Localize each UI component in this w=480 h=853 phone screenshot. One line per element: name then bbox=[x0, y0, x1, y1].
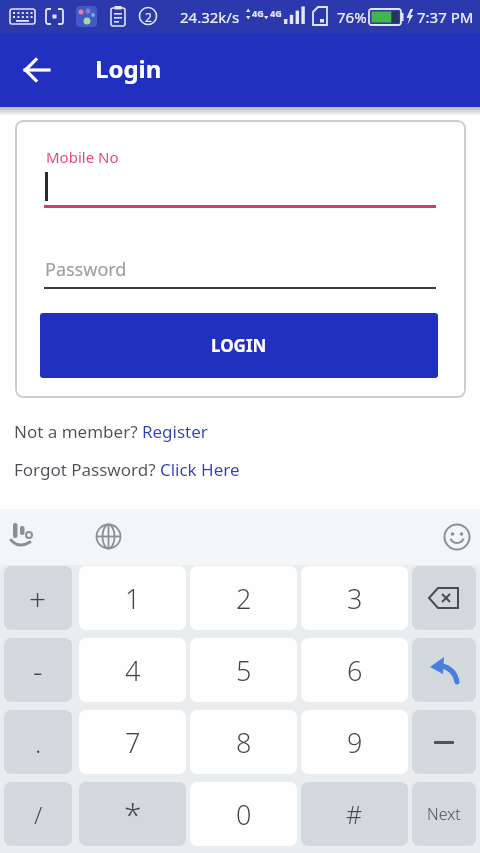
button[interactable]: 5 bbox=[190, 638, 297, 702]
button[interactable]: # bbox=[301, 782, 408, 846]
button[interactable]: 1 bbox=[79, 566, 186, 630]
button[interactable]: Next bbox=[412, 782, 476, 846]
button[interactable] bbox=[412, 566, 476, 630]
button[interactable]: 8 bbox=[190, 710, 297, 774]
button[interactable]: 9 bbox=[301, 710, 408, 774]
button[interactable] bbox=[412, 638, 476, 702]
staticText: 4 bbox=[125, 652, 141, 689]
staticText: 9 bbox=[347, 724, 363, 761]
button[interactable]: * bbox=[79, 782, 186, 846]
staticText: 24.32k/s bbox=[180, 7, 240, 27]
staticText: 3 bbox=[347, 580, 363, 617]
button[interactable] bbox=[10, 523, 42, 551]
button[interactable]: Not a member? Register bbox=[14, 420, 208, 443]
staticText: . bbox=[35, 725, 42, 760]
staticText: # bbox=[346, 797, 363, 831]
button[interactable]: 0 bbox=[190, 782, 297, 846]
button[interactable]: 2 bbox=[190, 566, 297, 630]
button[interactable] bbox=[24, 57, 50, 83]
button[interactable]: . bbox=[4, 710, 72, 774]
staticText: LOGIN bbox=[211, 334, 267, 357]
button[interactable]: 4 bbox=[79, 638, 186, 702]
staticText: Mobile No bbox=[46, 147, 119, 167]
button[interactable] bbox=[443, 523, 471, 551]
staticText: * bbox=[124, 792, 142, 836]
staticText: 5 bbox=[236, 652, 252, 689]
staticText: 6 bbox=[347, 652, 363, 689]
button[interactable] bbox=[412, 710, 476, 774]
staticText: Password bbox=[45, 257, 127, 282]
button[interactable]: 6 bbox=[301, 638, 408, 702]
button[interactable]: Forgot Password? Click Here bbox=[14, 458, 240, 481]
staticText: Login bbox=[95, 52, 162, 85]
staticText: 2 bbox=[236, 580, 252, 617]
staticText: 0 bbox=[236, 796, 252, 833]
staticText: + bbox=[29, 578, 47, 619]
staticText: 76% bbox=[337, 7, 367, 27]
staticText: 2 bbox=[145, 9, 152, 25]
button[interactable]: LOGIN bbox=[40, 313, 438, 378]
button[interactable]: / bbox=[4, 782, 72, 846]
staticText: Next bbox=[427, 803, 461, 825]
staticText: 4G bbox=[270, 7, 282, 19]
button[interactable]: 3 bbox=[301, 566, 408, 630]
staticText: 4G bbox=[252, 7, 264, 19]
button[interactable]: - bbox=[4, 638, 72, 702]
staticText: 1 bbox=[125, 580, 141, 617]
button[interactable] bbox=[95, 523, 122, 550]
staticText: - bbox=[33, 650, 43, 691]
staticText: / bbox=[34, 798, 43, 831]
staticText: 7:37 PM bbox=[417, 7, 474, 27]
staticText: 7 bbox=[125, 724, 141, 761]
button[interactable]: 7 bbox=[79, 710, 186, 774]
staticText: 8 bbox=[236, 724, 252, 761]
button[interactable]: + bbox=[4, 566, 72, 630]
